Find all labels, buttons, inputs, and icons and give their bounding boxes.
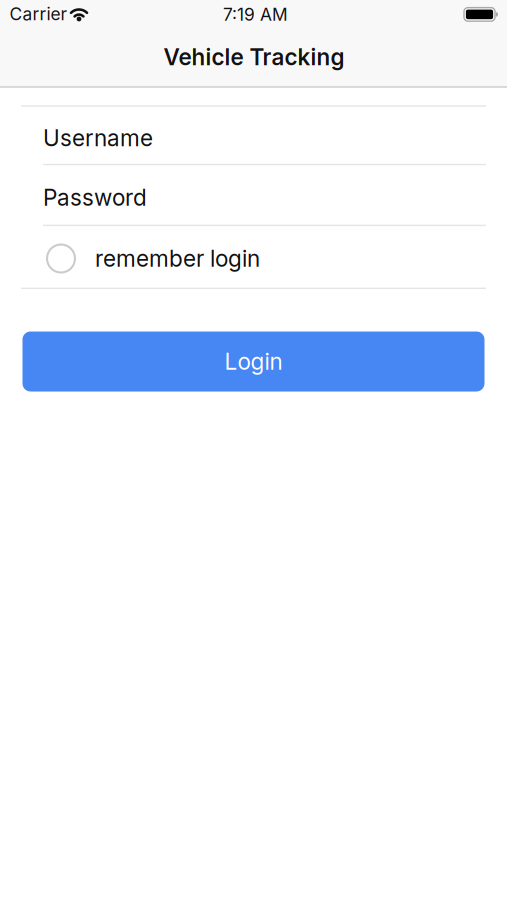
staticText: Username: [43, 125, 153, 151]
button[interactable]: remember login: [47, 228, 507, 289]
staticText: Password: [43, 184, 147, 211]
button[interactable]: Login: [22, 331, 484, 391]
staticText: remember login: [95, 245, 260, 272]
staticText: Carrier: [9, 4, 67, 24]
staticText: 7:19 AM: [223, 4, 288, 25]
button[interactable]: Password: [43, 168, 484, 227]
button[interactable]: Username: [43, 109, 484, 166]
staticText: Vehicle Tracking: [163, 43, 344, 71]
staticText: Login: [224, 348, 282, 375]
